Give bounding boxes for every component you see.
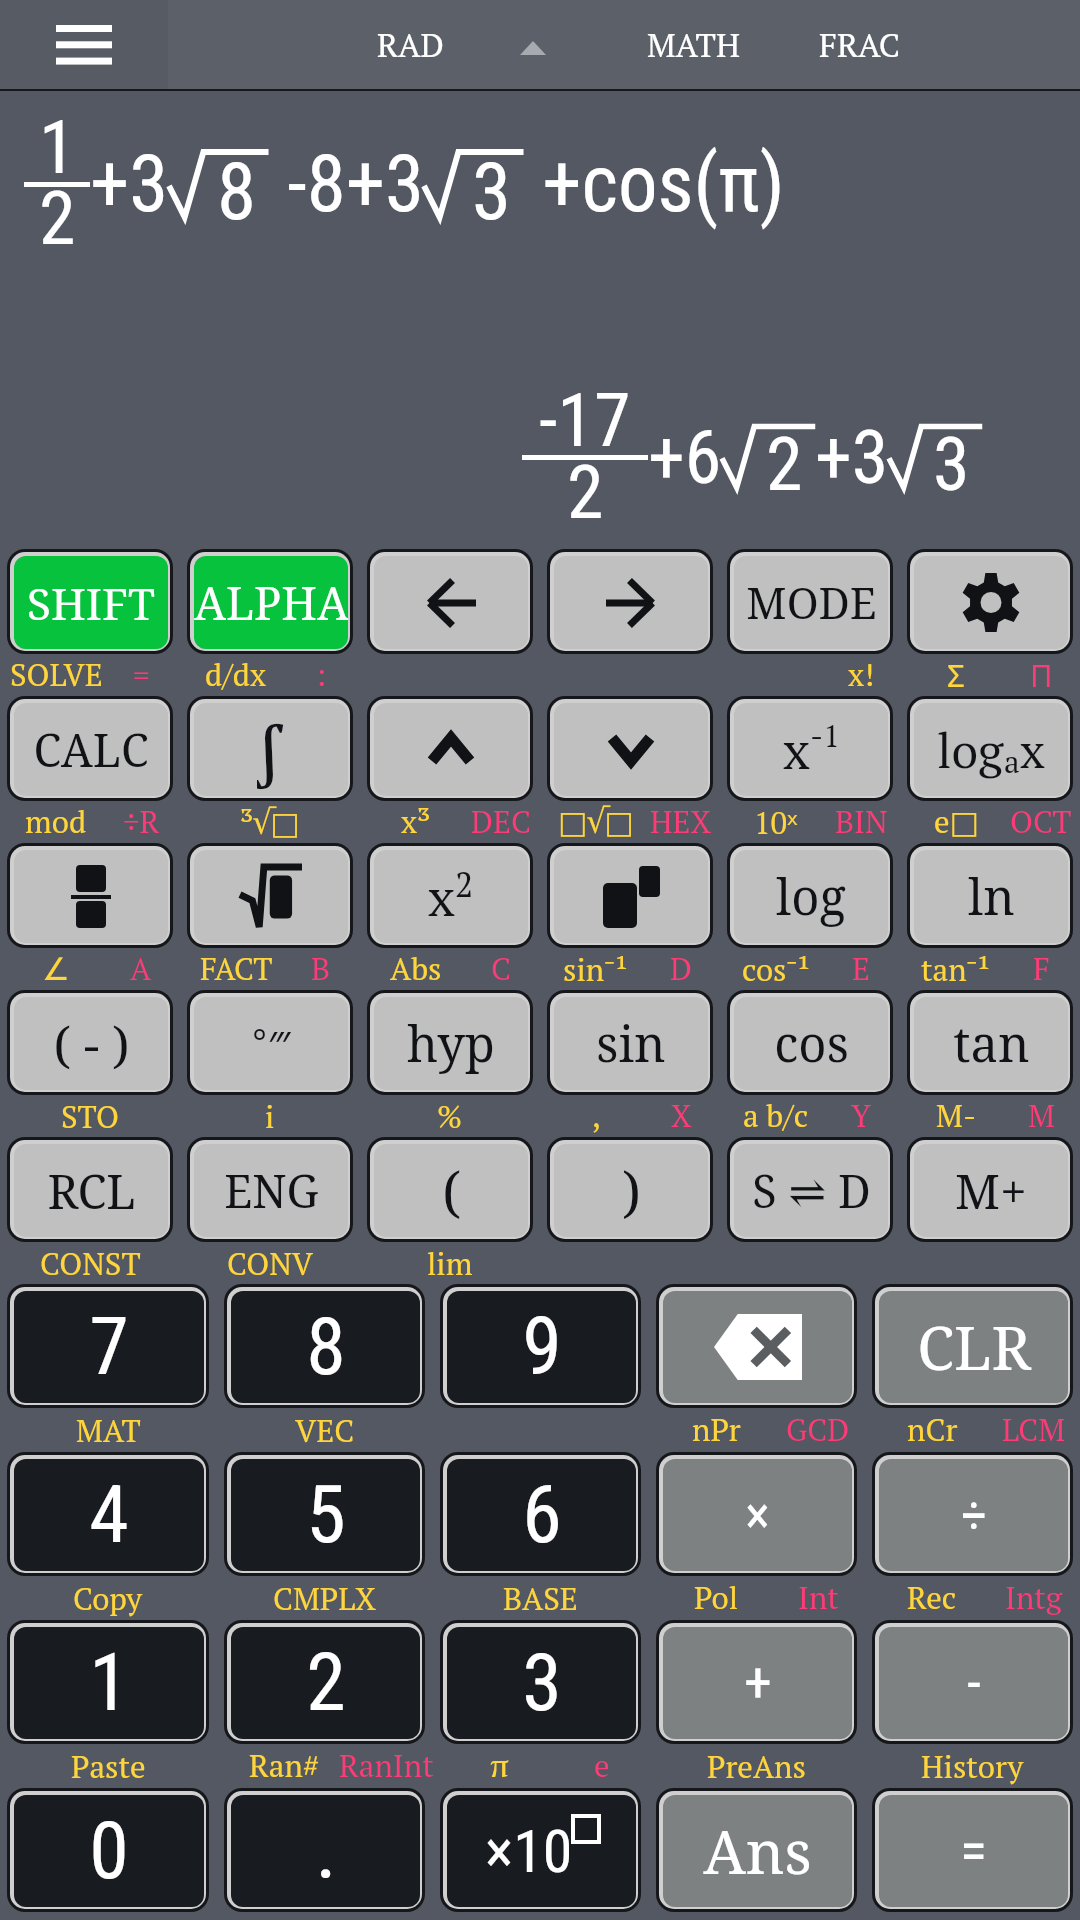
button[interactable]: xsq xyxy=(374,850,528,943)
button[interactable]: RCL xyxy=(14,1144,168,1237)
button[interactable]: 1 xyxy=(14,1627,204,1739)
staticText: F xyxy=(1033,948,1050,989)
staticText: -8+3 xyxy=(269,138,424,231)
staticText: MATH xyxy=(647,23,740,67)
staticText: tan⁻¹ xyxy=(921,948,991,990)
staticText: × xyxy=(745,1485,770,1546)
button[interactable]: sqrticon xyxy=(194,850,348,943)
staticText: ³√□ xyxy=(240,802,300,843)
staticText: +6 xyxy=(648,414,722,501)
staticText: a b/c xyxy=(743,1095,809,1136)
staticText: Rec xyxy=(907,1577,957,1618)
staticText: Intg xyxy=(1005,1577,1063,1618)
staticText: VEC xyxy=(295,1410,355,1451)
button[interactable]: MODE xyxy=(734,556,888,649)
staticText: ∠ xyxy=(42,951,70,987)
staticText: BIN xyxy=(835,801,888,842)
staticText: ÷R xyxy=(123,801,160,842)
button[interactable]: xinv xyxy=(734,703,888,796)
button[interactable]: 7 xyxy=(14,1291,204,1403)
button[interactable]: cos xyxy=(734,997,888,1090)
button[interactable]: S ⇌ D xyxy=(734,1144,888,1237)
button[interactable]: M+ xyxy=(914,1144,1068,1237)
button[interactable]: logax xyxy=(914,703,1068,796)
staticText: d/dx xyxy=(205,654,267,695)
staticText: SOLVE xyxy=(10,654,103,695)
staticText: +3 xyxy=(90,138,169,231)
button[interactable]: 9 xyxy=(447,1291,636,1403)
button[interactable]: ( xyxy=(374,1144,528,1237)
staticText: x xyxy=(783,715,810,784)
staticText: □√□ xyxy=(558,801,634,842)
button[interactable]: ex10 xyxy=(447,1795,636,1907)
staticText: SHIFT xyxy=(27,573,155,633)
button[interactable]: del xyxy=(663,1291,852,1403)
button[interactable]: 5 xyxy=(231,1459,420,1571)
button[interactable]: = xyxy=(879,1795,1068,1907)
staticText: HEX xyxy=(650,801,712,842)
button[interactable]: CLR xyxy=(879,1291,1068,1403)
staticText: CONV xyxy=(227,1243,314,1284)
button[interactable]: ÷ xyxy=(879,1459,1068,1571)
staticText: 7 xyxy=(89,1300,129,1394)
button[interactable]: sin xyxy=(554,997,708,1090)
button[interactable]: 0 xyxy=(14,1795,204,1907)
button[interactable]: down xyxy=(554,703,708,796)
staticText: 2 xyxy=(306,1636,346,1730)
button[interactable]: tan xyxy=(914,997,1068,1090)
staticText: log xyxy=(937,718,1004,782)
button[interactable]: Menu xyxy=(0,0,168,89)
staticText: mod xyxy=(25,801,87,842)
staticText: M xyxy=(1028,1095,1055,1136)
button[interactable]: 3 xyxy=(447,1627,636,1739)
staticText: lim xyxy=(427,1243,473,1284)
button[interactable]: ) xyxy=(554,1144,708,1237)
button[interactable]: CALC xyxy=(14,703,168,796)
button[interactable]: hyp xyxy=(374,997,528,1090)
button[interactable]: Ans xyxy=(663,1795,852,1907)
button[interactable]: - xyxy=(879,1627,1068,1739)
button[interactable]: 6 xyxy=(447,1459,636,1571)
button[interactable]: right xyxy=(554,556,708,649)
button[interactable]: 4 xyxy=(14,1459,204,1571)
button[interactable]: ( - ) xyxy=(14,997,168,1090)
button[interactable]: gear xyxy=(914,556,1068,649)
staticText: sin⁻¹ xyxy=(563,948,629,990)
staticText: ‴ xyxy=(268,1018,291,1070)
staticText: 3 xyxy=(522,1636,562,1730)
button[interactable]: SHIFT xyxy=(14,556,168,649)
staticText: ∫ xyxy=(257,703,285,796)
button[interactable]: + xyxy=(663,1627,852,1739)
staticText: C xyxy=(491,948,511,989)
staticText: π xyxy=(490,1745,510,1786)
staticText: 8 xyxy=(306,1300,346,1394)
staticText: RCL xyxy=(47,1159,136,1223)
staticText: RanInt xyxy=(339,1745,434,1786)
button[interactable]: ALPHA xyxy=(194,556,348,649)
staticText: . xyxy=(315,1804,337,1898)
button[interactable]: up xyxy=(374,703,528,796)
staticText: 2 xyxy=(455,862,474,907)
staticText: - xyxy=(967,1650,981,1716)
button[interactable]: ENG xyxy=(194,1144,348,1237)
button[interactable]: ln xyxy=(914,850,1068,943)
button[interactable]: fracicon xyxy=(14,850,168,943)
button[interactable]: 2 xyxy=(231,1627,420,1739)
button[interactable]: powicon xyxy=(554,850,708,943)
button[interactable]: 8 xyxy=(231,1291,420,1403)
staticText: 1 xyxy=(39,104,76,191)
button[interactable]: . xyxy=(231,1795,420,1907)
button[interactable]: × xyxy=(663,1459,852,1571)
staticText: Paste xyxy=(71,1746,146,1787)
staticText: ( xyxy=(442,1154,461,1228)
staticText: LCM xyxy=(1002,1409,1066,1450)
staticText: ) xyxy=(622,1154,641,1228)
button[interactable]: integral xyxy=(194,703,348,796)
staticText: ( - ) xyxy=(53,1010,130,1078)
button[interactable]: dms xyxy=(194,997,348,1090)
staticText: X xyxy=(671,1095,692,1136)
button[interactable]: left xyxy=(374,556,528,649)
staticText: = xyxy=(133,654,150,695)
button[interactable]: log xyxy=(734,850,888,943)
staticText: 3 xyxy=(933,421,970,508)
